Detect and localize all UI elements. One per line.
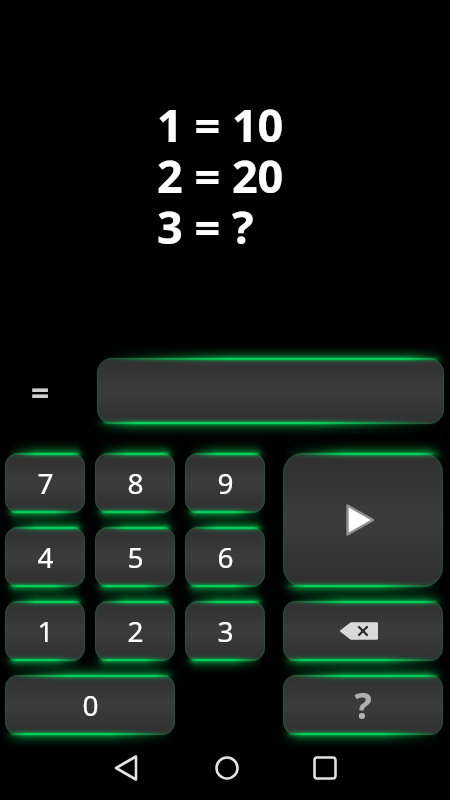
button[interactable]: 9 [185, 453, 265, 513]
staticText: 5 [127, 538, 144, 576]
button[interactable]: ? [283, 675, 443, 735]
button[interactable] [305, 748, 345, 788]
button[interactable] [207, 748, 247, 788]
button[interactable]: 2 [95, 601, 175, 661]
button[interactable]: 6 [185, 527, 265, 587]
button[interactable] [283, 453, 443, 587]
button[interactable] [106, 748, 146, 788]
staticText: 9 [217, 464, 234, 502]
button[interactable]: 8 [95, 453, 175, 513]
staticText: 2 [127, 612, 144, 650]
staticText: 3 [217, 612, 234, 650]
staticText: 6 [217, 538, 234, 576]
button[interactable]: 7 [5, 453, 85, 513]
staticText: 1 = 10 2 = 20 3 = ? [157, 94, 284, 257]
staticText: = [31, 371, 50, 415]
staticText: 8 [127, 464, 144, 502]
button[interactable] [97, 358, 444, 424]
button[interactable]: 4 [5, 527, 85, 587]
staticText: 1 [37, 612, 54, 650]
button[interactable]: 0 [5, 675, 175, 735]
staticText: ? [354, 681, 372, 730]
button[interactable]: 3 [185, 601, 265, 661]
staticText: 0 [82, 686, 99, 724]
staticText: 7 [37, 464, 54, 502]
button[interactable]: 1 [5, 601, 85, 661]
button[interactable] [283, 601, 443, 661]
staticText: 4 [37, 538, 54, 576]
button[interactable]: 5 [95, 527, 175, 587]
